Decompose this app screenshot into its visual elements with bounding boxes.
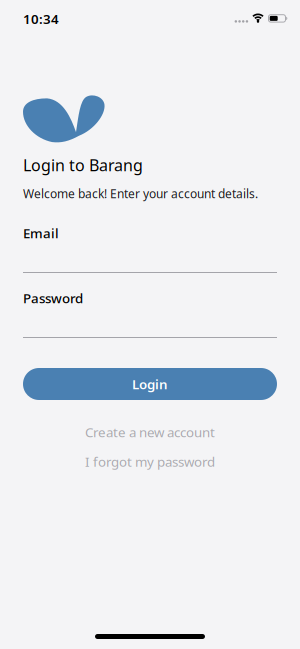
button[interactable]: Create a new account [65, 419, 235, 445]
staticText: Email [23, 224, 59, 242]
button[interactable] [23, 311, 277, 338]
staticText: Create a new account [85, 423, 215, 441]
button[interactable]: I forgot my password [65, 449, 235, 474]
staticText: Login [132, 375, 168, 393]
staticText: Welcome back! Enter your account details… [23, 185, 258, 201]
staticText: 10:34 [23, 10, 59, 28]
staticText: I forgot my password [85, 453, 215, 470]
staticText: Login to Barang [23, 154, 143, 176]
button[interactable] [23, 246, 277, 273]
button[interactable]: Login [23, 368, 277, 400]
staticText: Password [23, 289, 83, 307]
